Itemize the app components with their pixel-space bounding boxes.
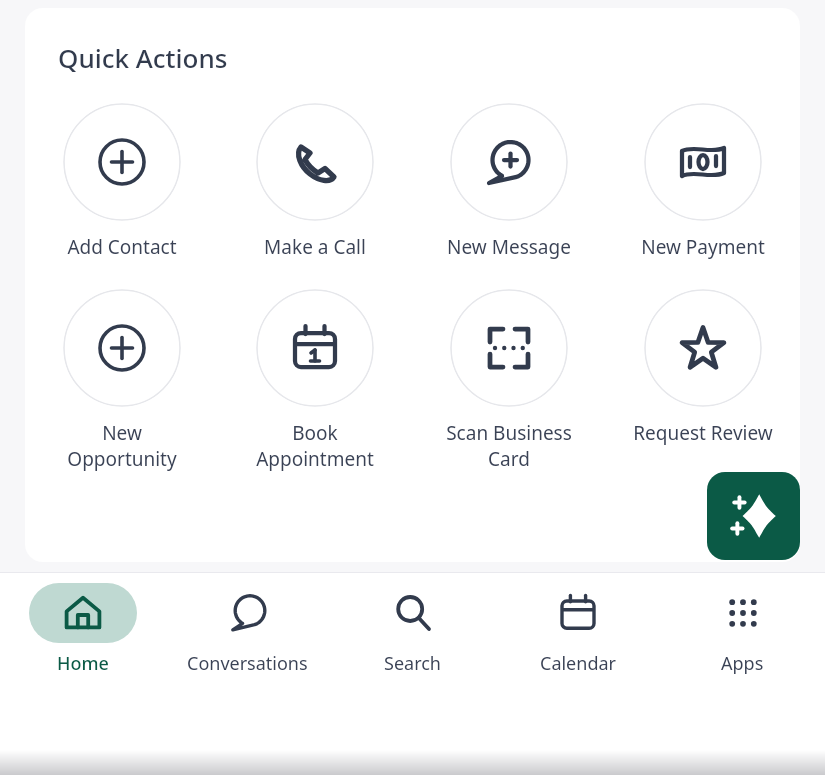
staticText: Apps <box>721 651 764 676</box>
button[interactable]: Add Contact <box>25 103 218 260</box>
button[interactable]: Request Review <box>606 289 800 446</box>
button[interactable]: Apps <box>660 583 825 676</box>
staticText: New Payment <box>641 234 765 260</box>
button[interactable]: New Message <box>412 103 606 260</box>
button[interactable]: Home <box>0 583 165 676</box>
staticText: Conversations <box>187 651 308 676</box>
staticText: New Message <box>447 234 571 260</box>
staticText: Quick Actions <box>58 40 228 75</box>
staticText: Calendar <box>540 651 616 676</box>
button[interactable]: Book Appointment <box>218 289 412 472</box>
button[interactable]: Scan Business Card <box>412 289 606 472</box>
staticText: Scan Business Card <box>446 420 572 472</box>
staticText: Request Review <box>633 420 773 446</box>
staticText: Book Appointment <box>256 420 374 472</box>
button[interactable]: Make a Call <box>218 103 412 260</box>
staticText: Home <box>57 651 109 676</box>
button[interactable]: Conversations <box>165 583 330 676</box>
staticText: Add Contact <box>67 234 177 260</box>
button[interactable]: New Payment <box>606 103 800 260</box>
staticText: New Opportunity <box>67 420 177 472</box>
staticText: Search <box>384 651 441 676</box>
button[interactable]: New Opportunity <box>25 289 218 472</box>
button[interactable]: AI assistant <box>707 472 800 560</box>
button[interactable]: Calendar <box>495 583 660 676</box>
button[interactable]: Search <box>330 583 495 676</box>
staticText: Make a Call <box>264 234 366 260</box>
